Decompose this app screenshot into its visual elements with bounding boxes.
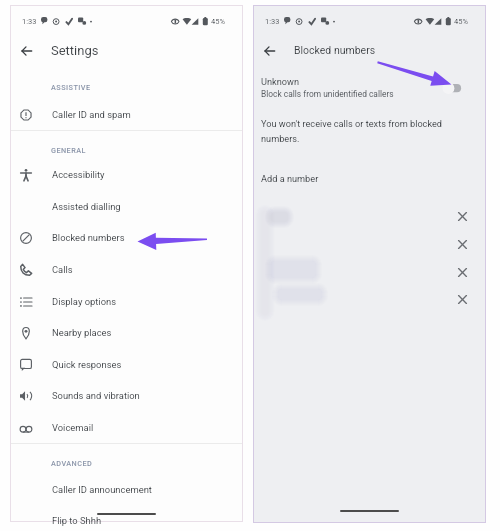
- button[interactable]: Remove blocked number: [450, 260, 474, 284]
- staticText: Calls: [52, 264, 73, 275]
- button[interactable]: Calls: [11, 254, 242, 285]
- button[interactable]: Blocked numbers: [11, 222, 242, 253]
- staticText: ASSISTIVE: [51, 83, 91, 92]
- staticText: Quick responses: [52, 359, 122, 370]
- button[interactable]: Display options: [11, 286, 242, 317]
- button[interactable]: Flip to Shhh: [11, 505, 242, 531]
- staticText: Nearby places: [52, 327, 112, 338]
- staticText: Add a number: [261, 173, 319, 184]
- staticText: Unknown: [261, 76, 299, 87]
- button[interactable]: Sounds and vibration: [11, 380, 242, 411]
- button[interactable]: Accessibility: [11, 159, 242, 190]
- staticText: Block calls from unidentified callers: [261, 89, 394, 99]
- button[interactable]: Assisted dialling: [11, 191, 242, 222]
- staticText: Blocked numbers: [294, 44, 376, 56]
- button[interactable]: Quick responses: [11, 349, 242, 380]
- staticText: Assisted dialling: [52, 201, 121, 212]
- staticText: Caller ID and spam: [52, 109, 131, 120]
- button[interactable]: Caller ID and spam: [11, 99, 242, 130]
- button[interactable]: Unknown: [254, 71, 485, 107]
- staticText: Caller ID announcement: [52, 484, 152, 495]
- staticText: 45%: [211, 17, 225, 26]
- button[interactable]: Nearby places: [11, 317, 242, 348]
- button[interactable]: Caller ID announcement: [11, 474, 242, 505]
- staticText: 1:33: [265, 17, 280, 26]
- button[interactable]: Add a number: [254, 166, 485, 190]
- button[interactable]: Remove blocked number: [450, 204, 474, 228]
- staticText: numbers.: [261, 133, 300, 144]
- staticText: Display options: [52, 296, 117, 307]
- staticText: Voicemail: [52, 422, 94, 433]
- staticText: Blocked numbers: [52, 232, 125, 243]
- button[interactable]: Remove blocked number: [450, 287, 474, 311]
- staticText: Flip to Shhh: [52, 515, 102, 526]
- button[interactable]: Voicemail: [11, 412, 242, 443]
- button[interactable]: Remove blocked number: [450, 232, 474, 256]
- staticText: ADVANCED: [51, 459, 93, 468]
- button[interactable]: Back: [11, 36, 41, 66]
- button[interactable]: Back: [254, 36, 284, 66]
- staticText: Settings: [51, 43, 99, 58]
- staticText: You won't receive calls or texts from bl…: [261, 118, 443, 129]
- staticText: Sounds and vibration: [52, 390, 140, 401]
- staticText: 45%: [454, 17, 468, 26]
- staticText: 1:33: [22, 17, 37, 26]
- staticText: Accessibility: [52, 169, 105, 180]
- staticText: GENERAL: [51, 146, 86, 155]
